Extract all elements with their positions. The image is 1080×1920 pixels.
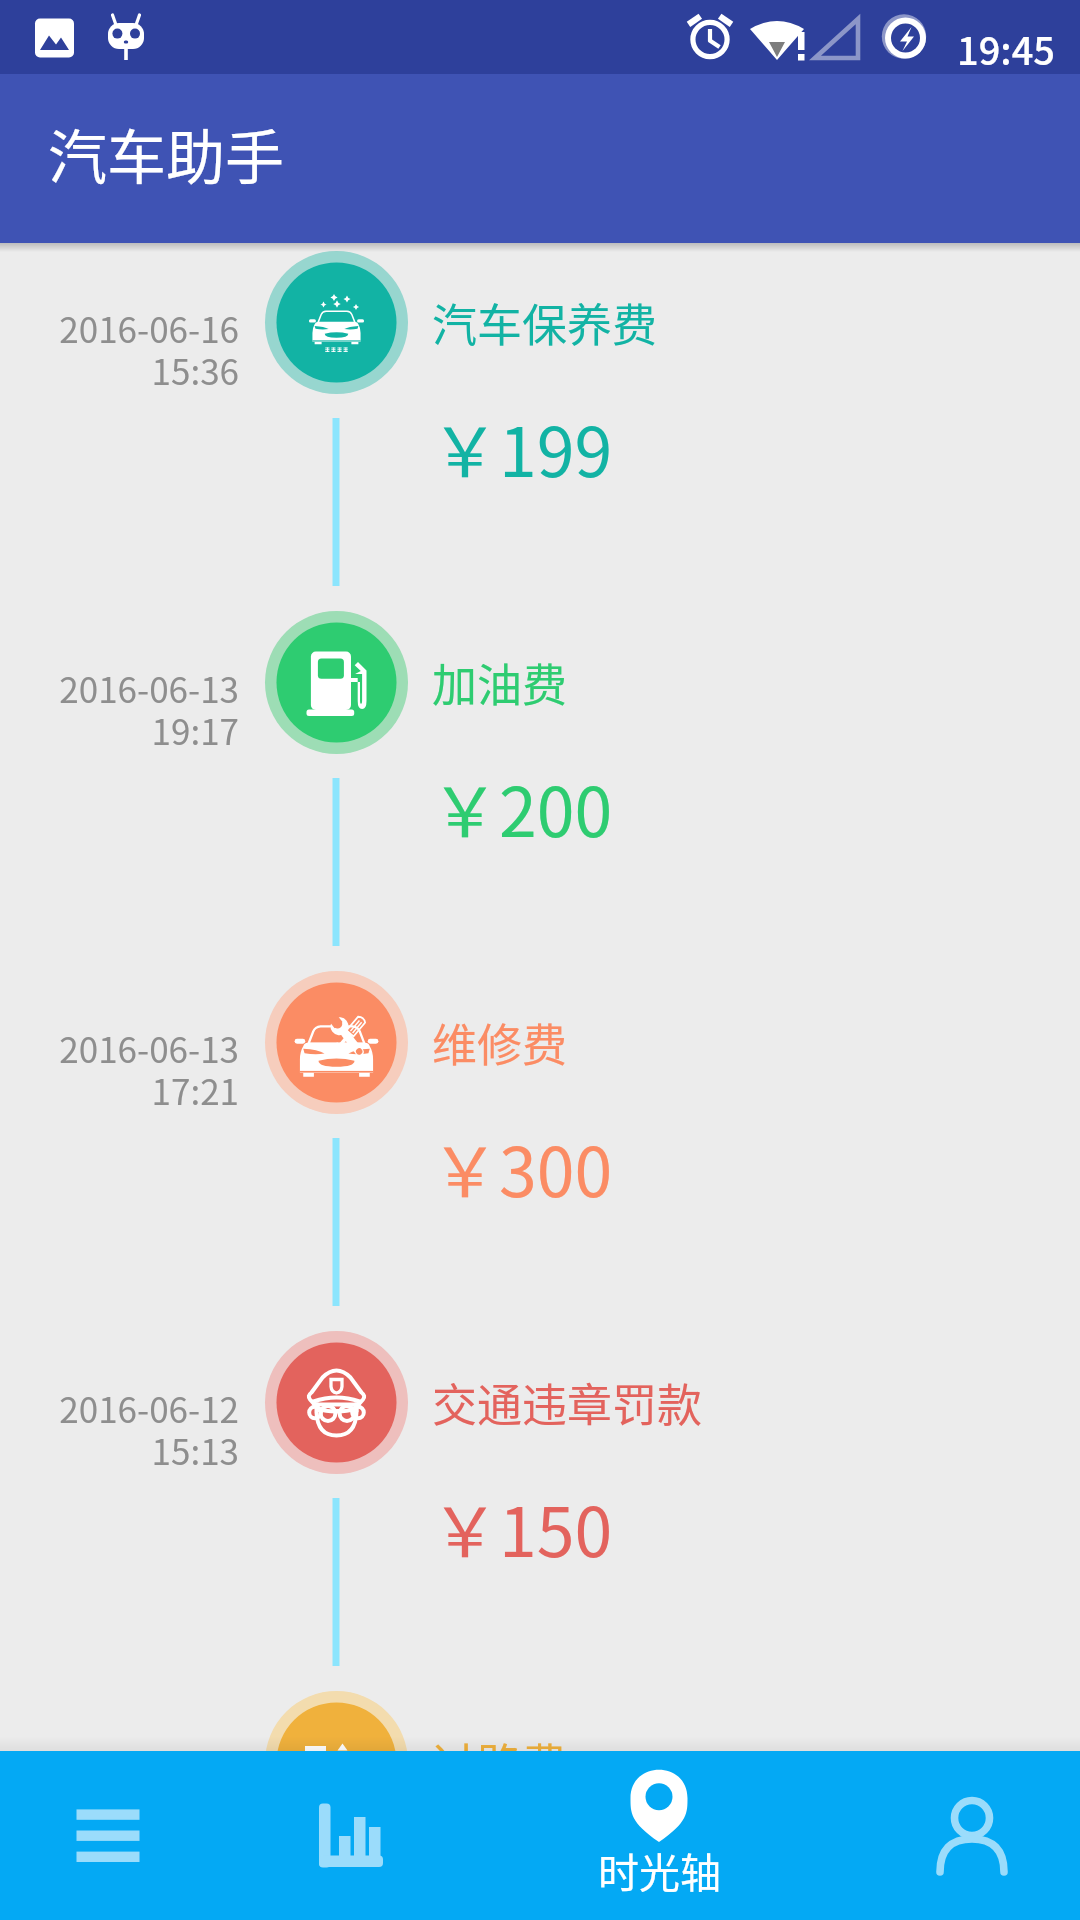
button[interactable]: 2016-06-13 [0,892,1080,1222]
staticText: 19:17 [0,704,239,755]
staticText: 2016-06-16 [0,302,239,353]
staticText: 汽车助手 [48,111,285,196]
button[interactable]: Menu [0,1751,270,1920]
button[interactable]: 2016-06-16 [0,172,1080,502]
staticText: 2016-06-11 [0,1742,239,1793]
staticText: 17:21 [0,1064,239,1115]
staticText: 维修费 [432,1010,568,1075]
staticText: ￥200 [431,758,613,856]
staticText: 汽车保养费 [432,290,658,355]
staticText: 15:13 [0,1424,239,1475]
staticText: 交通违章罚款 [432,1370,703,1435]
staticText: 2016-06-12 [0,1382,239,1433]
staticText: 时光轴 [598,1840,721,1899]
staticText: ￥199 [431,398,613,496]
staticText: ￥150 [431,1478,613,1576]
staticText: ￥300 [431,1118,613,1216]
button[interactable]: 2016-06-11 [0,1612,1080,1920]
staticText: 2016-06-13 [0,1022,239,1073]
button[interactable]: 2016-06-13 [0,532,1080,862]
staticText: 19:45 [957,21,1055,76]
staticText: 加油费 [432,650,568,715]
staticText: 10:00 [0,1784,239,1835]
button[interactable]: 2016-06-12 [0,1252,1080,1582]
button[interactable]: Profile [810,1751,1080,1920]
button[interactable]: Statistics [270,1751,540,1920]
staticText: 2016-06-13 [0,662,239,713]
button[interactable]: Timeline [540,1751,810,1920]
staticText: 15:36 [0,344,239,395]
staticText: 过路费 [432,1730,568,1795]
